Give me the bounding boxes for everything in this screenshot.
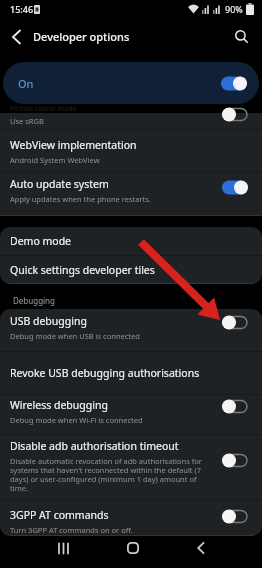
staticText: Debugging [13,295,55,306]
button[interactable]: Wireless debugging [0,395,262,434]
button[interactable] [12,30,21,44]
button[interactable]: Demo mode [0,227,262,255]
button[interactable]: 3GPP AT commands [0,501,262,535]
staticText: Disable automatic revocation of adb auth… [10,456,204,493]
staticText: On [18,76,34,91]
staticText: Debug mode when USB is connected [10,331,140,341]
button[interactable]: Quick settings developer tiles [0,256,262,283]
staticText: Quick settings developer tiles [10,263,155,277]
staticText: Wireless debugging [10,398,108,412]
staticText: 15:46 [10,3,34,15]
staticText: 90% [225,3,243,15]
staticText: Android System WebView [10,155,100,165]
staticText: Picture colour mode [10,104,77,113]
staticText: USB debugging [10,314,87,328]
staticText: WebView implementation [10,138,137,152]
staticText: Auto update system [10,177,109,191]
staticText: Revoke USB debugging authorisations [10,366,200,380]
button[interactable]: WebView implementation [0,130,262,172]
staticText: Disable adb authorisation timeout [10,439,179,453]
button[interactable]: Disable adb authorisation timeout [0,435,262,500]
staticText: Apply updates when the phone restarts. [10,194,151,204]
button[interactable] [235,30,248,43]
button[interactable]: USB debugging [0,309,262,351]
button[interactable] [58,543,70,554]
button[interactable]: Auto update system [0,173,262,215]
staticText: Debug mode when Wi-Fi is connected [10,415,143,425]
button[interactable]: Use sRGB [0,113,262,129]
button[interactable] [127,542,139,554]
button[interactable] [197,542,205,554]
staticText: Turn 3GPP AT commands on or off. [10,525,133,535]
staticText: Use sRGB [10,116,44,126]
staticText: Demo mode [10,234,72,248]
button[interactable]: Revoke USB debugging authorisations [0,352,262,394]
staticText: Developer options [33,29,130,44]
button[interactable]: On [3,62,259,104]
staticText: 3GPP AT commands [10,508,109,522]
